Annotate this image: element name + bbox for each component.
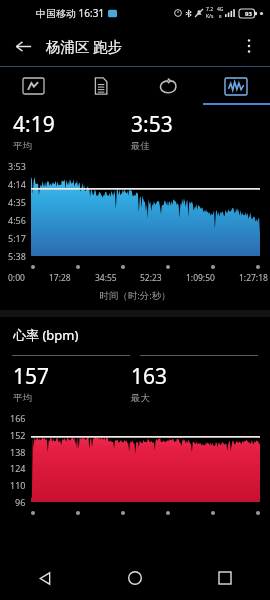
button[interactable]: More options: [233, 30, 265, 62]
staticText: 最佳: [131, 140, 150, 152]
staticText: ıı: [219, 13, 222, 20]
staticText: 4G: [217, 6, 224, 13]
staticText: 7.2: [206, 6, 214, 13]
button[interactable]: Back: [6, 29, 40, 63]
staticText: 3:53: [8, 160, 26, 172]
staticText: K/s: [206, 13, 214, 20]
button[interactable]: Charts: [202, 67, 270, 105]
staticText: 5:17: [8, 232, 26, 244]
staticText: 4:14: [8, 178, 26, 190]
staticText: 中国移动 16:31: [36, 6, 105, 20]
staticText: 时间（时:分:秒）: [0, 289, 270, 302]
staticText: 34:55: [95, 272, 117, 284]
staticText: 166: [10, 412, 26, 424]
staticText: 4:56: [8, 214, 26, 226]
staticText: 17:28: [49, 272, 71, 284]
staticText: 平均: [13, 392, 32, 404]
button[interactable]: Map: [0, 67, 67, 105]
staticText: 152: [10, 429, 26, 441]
staticText: 4:35: [8, 196, 26, 208]
staticText: 4:19: [13, 110, 55, 139]
staticText: 52:23: [140, 272, 162, 284]
staticText: 163: [131, 362, 168, 391]
staticText: 3:53: [131, 110, 173, 139]
staticText: 1:09:50: [186, 272, 215, 284]
button[interactable]: Recents: [180, 556, 270, 600]
staticText: 杨浦区 跑步: [46, 36, 123, 56]
staticText: 0:00: [8, 272, 25, 284]
staticText: 138: [10, 446, 26, 458]
staticText: 5:38: [8, 250, 26, 262]
staticText: 110: [10, 479, 26, 491]
button[interactable]: Laps: [134, 67, 202, 105]
staticText: 最大: [131, 392, 150, 404]
staticText: 1:27:18: [239, 272, 268, 284]
staticText: 平均: [13, 140, 32, 152]
button[interactable]: Back: [0, 556, 90, 600]
staticText: 157: [13, 362, 50, 391]
staticText: 96: [15, 496, 26, 508]
staticText: 93: [245, 10, 252, 18]
staticText: 心率 (bpm): [13, 326, 79, 344]
button[interactable]: Splits: [67, 67, 134, 105]
button[interactable]: Home: [90, 556, 180, 600]
staticText: 124: [10, 462, 26, 474]
